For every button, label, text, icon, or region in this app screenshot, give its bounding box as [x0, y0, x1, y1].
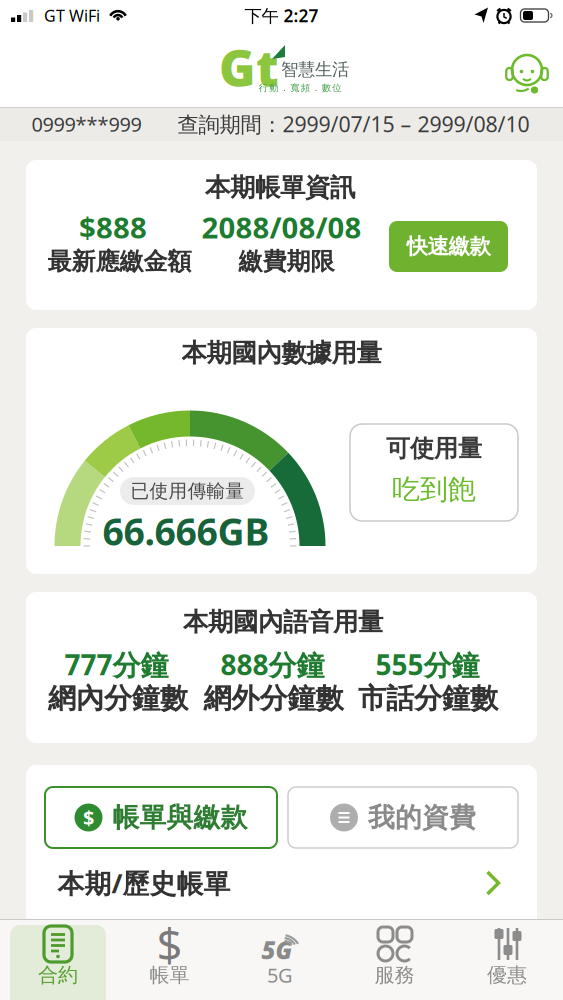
- staticText: 我的資費: [368, 801, 476, 834]
- button[interactable]: 5G: [230, 920, 330, 1000]
- staticText: 最新應繳金額: [47, 247, 191, 276]
- button[interactable]: $: [119, 920, 219, 1000]
- staticText: Gt: [219, 34, 279, 100]
- staticText: 2088/08/08: [201, 207, 361, 246]
- button[interactable]: 本期/歷史帳單: [57, 859, 502, 907]
- button[interactable]: [505, 50, 549, 96]
- staticText: 合約: [38, 963, 78, 987]
- button[interactable]: 我的資費: [288, 787, 518, 848]
- staticText: 網外分鐘數: [203, 681, 343, 716]
- staticText: 快速繳款: [406, 233, 490, 260]
- staticText: 本期國內語音用量: [183, 606, 383, 637]
- staticText: 本期國內數據用量: [181, 337, 381, 368]
- staticText: 777分鐘: [64, 646, 168, 683]
- staticText: 888分鐘: [220, 646, 324, 683]
- staticText: 查詢期間：2999/07/15 – 2999/08/10: [177, 110, 529, 138]
- staticText: 市話分鐘數: [358, 681, 498, 716]
- button[interactable]: 合約: [10, 920, 106, 1000]
- staticText: 可使用量: [386, 434, 482, 463]
- staticText: 已使用傳輸量: [130, 479, 244, 502]
- staticText: 555分鐘: [375, 646, 479, 683]
- staticText: 0999***999: [31, 111, 141, 137]
- staticText: 本期帳單資訊: [205, 172, 355, 203]
- staticText: $888: [79, 207, 147, 246]
- button[interactable]: $: [45, 787, 277, 848]
- staticText: 下午 2:27: [244, 4, 318, 27]
- staticText: 66.666GB: [102, 506, 269, 556]
- staticText: 網內分鐘數: [48, 681, 188, 716]
- staticText: 帳單: [149, 963, 189, 987]
- staticText: 吃到飽: [392, 472, 476, 507]
- staticText: 繳費期限: [238, 247, 334, 276]
- staticText: 5G: [267, 962, 293, 988]
- button[interactable]: 服務: [344, 920, 444, 1000]
- staticText: $: [83, 804, 94, 831]
- staticText: 本期/歷史帳單: [57, 865, 230, 901]
- staticText: 行動．寬頻．數位: [259, 82, 341, 94]
- staticText: 優惠: [487, 963, 527, 987]
- staticText: GT WiFi: [44, 5, 100, 26]
- staticText: 帳單與繳款: [112, 801, 247, 834]
- staticText: 智慧生活: [281, 59, 349, 80]
- staticText: $: [156, 914, 182, 974]
- staticText: 服務: [374, 963, 414, 987]
- button[interactable]: 優惠: [457, 920, 557, 1000]
- button[interactable]: 快速繳款: [389, 221, 508, 272]
- staticText: 5G: [261, 934, 292, 966]
